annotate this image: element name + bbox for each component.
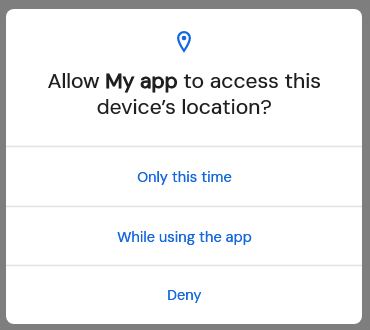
staticText: Only this time [137, 168, 232, 187]
staticText: Deny [167, 286, 202, 305]
staticText: Deny [167, 286, 202, 305]
staticText: Allow My app to access this device’s loc… [26, 67, 342, 121]
button[interactable]: Only this time [6, 146, 362, 206]
staticText: Only this time [137, 168, 232, 187]
staticText: While using the app [117, 228, 252, 247]
button[interactable]: Deny [6, 265, 362, 324]
staticText: Allow My app to access this device’s loc… [26, 67, 342, 121]
staticText: While using the app [117, 228, 252, 247]
other: Location [177, 31, 191, 52]
button[interactable]: While using the app [6, 206, 362, 266]
